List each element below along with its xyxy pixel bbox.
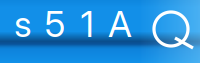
staticText: A xyxy=(108,2,132,46)
staticText: 1 xyxy=(80,2,93,46)
staticText: 5 xyxy=(44,2,65,46)
staticText: s xyxy=(14,2,32,46)
